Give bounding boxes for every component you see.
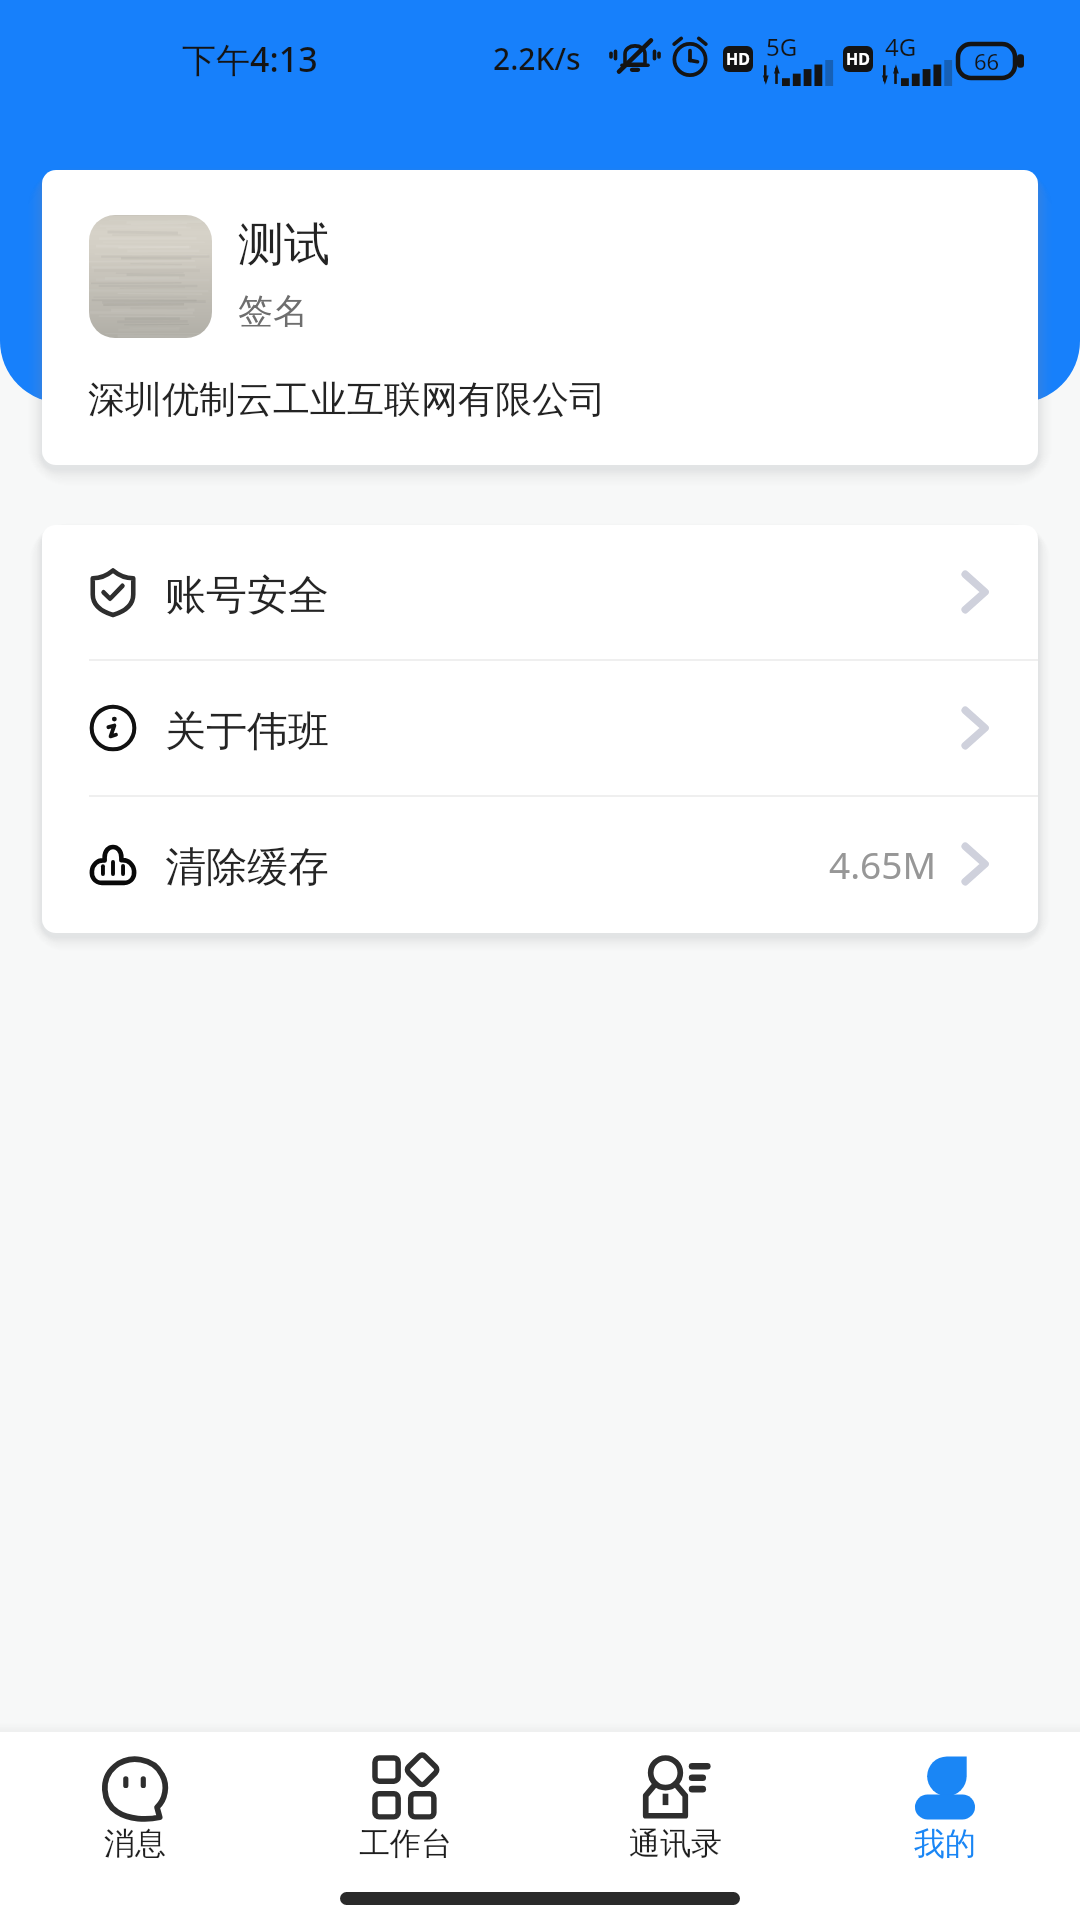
staticText: 工作台 [359,1824,452,1863]
staticText: HD [726,48,750,70]
other: About [86,701,140,755]
button[interactable]: Avatar [42,170,1038,465]
staticText: 通讯录 [629,1824,722,1863]
staticText: 账号安全 [165,570,329,622]
button[interactable]: 消息 [0,1732,270,1920]
staticText: 深圳优制云工业互联网有限公司 [88,376,606,423]
staticText: 5G [766,30,798,63]
button[interactable]: 工作台 [270,1732,540,1920]
button[interactable]: Clear cache [42,797,1038,931]
staticText: 2.2K/s [493,38,581,79]
other: Account security [86,565,140,619]
staticText: 66 [974,46,1000,76]
staticText: 关于伟班 [165,706,329,758]
other: Avatar [89,215,212,338]
button[interactable]: 我的 [810,1732,1080,1920]
staticText: 测试 [238,216,330,274]
button[interactable]: 通讯录 [540,1732,810,1920]
staticText: 消息 [104,1824,166,1863]
other: Clear cache [86,837,140,891]
staticText: HD [846,48,870,70]
staticText: 清除缓存 [165,842,329,894]
staticText: 签名 [238,289,308,333]
button[interactable]: Account security [42,525,1038,659]
staticText: 4G [885,30,917,63]
button[interactable]: About [42,661,1038,795]
staticText: 下午4:13 [182,36,318,82]
staticText: 我的 [914,1824,976,1863]
staticText: 4.65M [829,839,936,889]
